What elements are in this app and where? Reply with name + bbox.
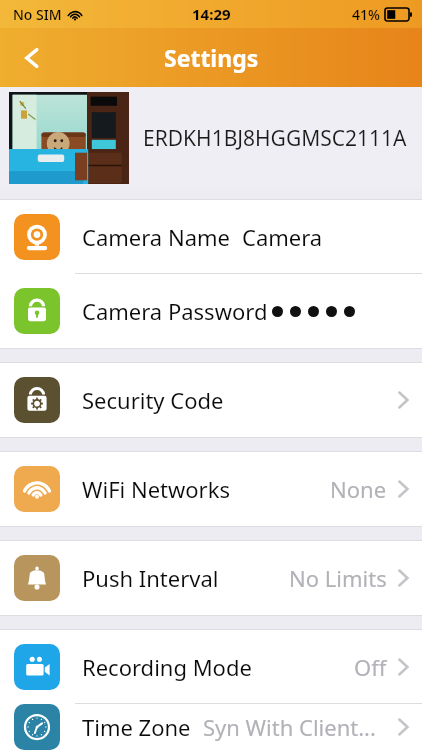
staticText: Off <box>354 652 387 682</box>
button[interactable]: Time Zone <box>0 704 422 750</box>
staticText: Recording Mode <box>82 652 252 682</box>
staticText: Time Zone <box>82 712 191 742</box>
button[interactable]: ERDKH1BJ8HGGMSC2111A <box>0 87 422 189</box>
staticText: 14:29 <box>192 4 231 24</box>
staticText: Camera Password <box>82 296 268 326</box>
button[interactable]: Camera Name <box>0 200 422 274</box>
staticText: Push Interval <box>82 563 219 593</box>
staticText: Security Code <box>82 385 224 415</box>
staticText: No SIM <box>13 5 62 24</box>
staticText: ERDKH1BJ8HGGMSC2111A <box>143 124 407 153</box>
button[interactable]: Back <box>8 34 56 82</box>
staticText: None <box>330 474 387 504</box>
button[interactable]: Recording Mode <box>0 630 422 704</box>
staticText: Camera <box>242 222 323 252</box>
staticText: 41% <box>352 5 380 24</box>
staticText: Syn With Client... <box>203 712 376 742</box>
staticText: Camera Name <box>82 222 230 252</box>
staticText: Settings <box>164 42 259 73</box>
button[interactable]: WiFi Networks <box>0 452 422 526</box>
button[interactable]: Push Interval <box>0 541 422 615</box>
button[interactable]: Security Code <box>0 363 422 437</box>
staticText: WiFi Networks <box>82 474 230 504</box>
button[interactable]: Camera Password <box>0 274 422 348</box>
staticText: No Limits <box>289 563 387 593</box>
